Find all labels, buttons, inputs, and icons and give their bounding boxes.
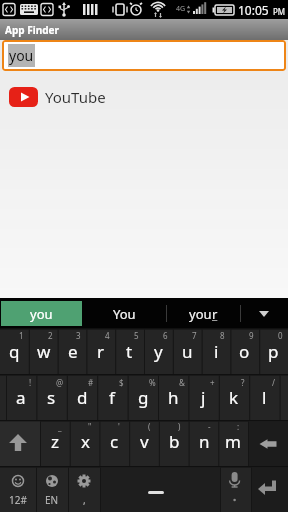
button[interactable]: j bbox=[188, 375, 218, 419]
staticText: ( bbox=[148, 421, 151, 432]
staticText: App Finder bbox=[5, 23, 59, 37]
button[interactable]: you bbox=[1, 301, 82, 326]
staticText: : bbox=[237, 421, 240, 432]
staticText: & bbox=[179, 377, 185, 388]
staticText: s bbox=[47, 386, 56, 409]
button[interactable]: d bbox=[67, 375, 97, 419]
button[interactable]: EN bbox=[36, 490, 68, 510]
staticText: f bbox=[109, 386, 115, 409]
staticText: m bbox=[225, 430, 241, 453]
staticText: 2 bbox=[48, 330, 53, 341]
staticText: 4G bbox=[176, 4, 186, 14]
button[interactable]: c bbox=[99, 419, 129, 463]
button[interactable]: m bbox=[218, 419, 248, 463]
staticText: e bbox=[68, 340, 78, 363]
staticText: 4 bbox=[105, 330, 110, 341]
button[interactable]: w bbox=[29, 329, 58, 373]
staticText: q bbox=[9, 340, 20, 363]
staticText: u bbox=[182, 340, 193, 363]
button[interactable]: you bbox=[2, 40, 286, 71]
button[interactable]: you bbox=[167, 302, 240, 325]
button[interactable]: x bbox=[70, 419, 100, 463]
button[interactable]: t bbox=[115, 329, 144, 373]
staticText: + bbox=[210, 377, 215, 388]
staticText: you bbox=[9, 46, 34, 65]
staticText: - bbox=[208, 421, 211, 432]
staticText: ' bbox=[118, 421, 120, 432]
staticText: PM bbox=[273, 6, 286, 17]
staticText: z bbox=[51, 430, 59, 453]
staticText: YouTube bbox=[45, 87, 106, 107]
staticText: ) bbox=[178, 421, 181, 432]
button[interactable]: a bbox=[6, 375, 36, 419]
staticText: ? bbox=[241, 377, 245, 388]
staticText: k bbox=[229, 386, 239, 409]
staticText: y bbox=[154, 340, 163, 363]
button[interactable]: v bbox=[129, 419, 159, 463]
staticText: r bbox=[97, 340, 105, 363]
staticText: EN bbox=[45, 493, 59, 507]
staticText: you bbox=[30, 305, 53, 323]
staticText: " bbox=[88, 421, 92, 432]
staticText: _ bbox=[58, 421, 62, 432]
button[interactable] bbox=[100, 467, 220, 512]
button[interactable] bbox=[240, 302, 288, 325]
button[interactable]: r bbox=[86, 329, 115, 373]
staticText: l bbox=[262, 386, 267, 409]
staticText: / bbox=[272, 377, 275, 388]
button[interactable]: z bbox=[40, 419, 70, 463]
staticText: % bbox=[149, 377, 156, 388]
staticText: 9 bbox=[249, 330, 254, 341]
staticText: h bbox=[168, 386, 179, 409]
staticText: 10:05 bbox=[238, 2, 269, 18]
button[interactable]: q bbox=[0, 329, 29, 373]
staticText: o bbox=[239, 340, 250, 363]
staticText: $ bbox=[119, 377, 124, 388]
staticText: 0 bbox=[278, 330, 283, 341]
staticText: 12# bbox=[9, 493, 27, 507]
staticText: ! bbox=[29, 377, 32, 388]
button[interactable]: l bbox=[249, 375, 279, 419]
button[interactable]: e bbox=[58, 329, 87, 373]
staticText: x bbox=[81, 430, 90, 453]
staticText: 1 bbox=[19, 330, 24, 341]
button[interactable]: g bbox=[128, 375, 158, 419]
staticText: a bbox=[16, 386, 26, 409]
button[interactable]: , bbox=[68, 490, 100, 510]
staticText: b bbox=[169, 430, 180, 453]
staticText: 8 bbox=[220, 330, 225, 341]
button[interactable]: s bbox=[36, 375, 66, 419]
staticText: you bbox=[189, 305, 212, 323]
button[interactable] bbox=[251, 467, 288, 512]
staticText: 7 bbox=[192, 330, 197, 341]
staticText: w bbox=[37, 340, 51, 363]
button[interactable]: u bbox=[173, 329, 202, 373]
staticText: , bbox=[83, 493, 86, 507]
button[interactable]: YouTube bbox=[0, 77, 288, 117]
staticText: c bbox=[110, 430, 119, 453]
button[interactable] bbox=[0, 421, 40, 466]
staticText: j bbox=[201, 386, 206, 409]
button[interactable]: i bbox=[202, 329, 231, 373]
staticText: t bbox=[126, 340, 133, 363]
staticText: n bbox=[199, 430, 210, 453]
button[interactable]: 12# bbox=[0, 490, 36, 510]
staticText: # bbox=[88, 377, 94, 388]
button[interactable]: n bbox=[189, 419, 219, 463]
button[interactable] bbox=[248, 421, 288, 466]
button[interactable]: You bbox=[83, 302, 166, 325]
button[interactable]: o bbox=[230, 329, 259, 373]
button[interactable] bbox=[220, 467, 251, 512]
staticText: i bbox=[214, 340, 219, 363]
button[interactable]: p bbox=[259, 329, 288, 373]
staticText: d bbox=[77, 386, 88, 409]
button[interactable]: k bbox=[219, 375, 249, 419]
button[interactable]: b bbox=[159, 419, 189, 463]
staticText: 5 bbox=[134, 330, 139, 341]
button[interactable]: h bbox=[158, 375, 188, 419]
button[interactable]: f bbox=[97, 375, 127, 419]
staticText: g bbox=[138, 386, 149, 409]
staticText: 3 bbox=[76, 330, 81, 341]
button[interactable]: y bbox=[144, 329, 173, 373]
staticText: r bbox=[212, 305, 218, 323]
